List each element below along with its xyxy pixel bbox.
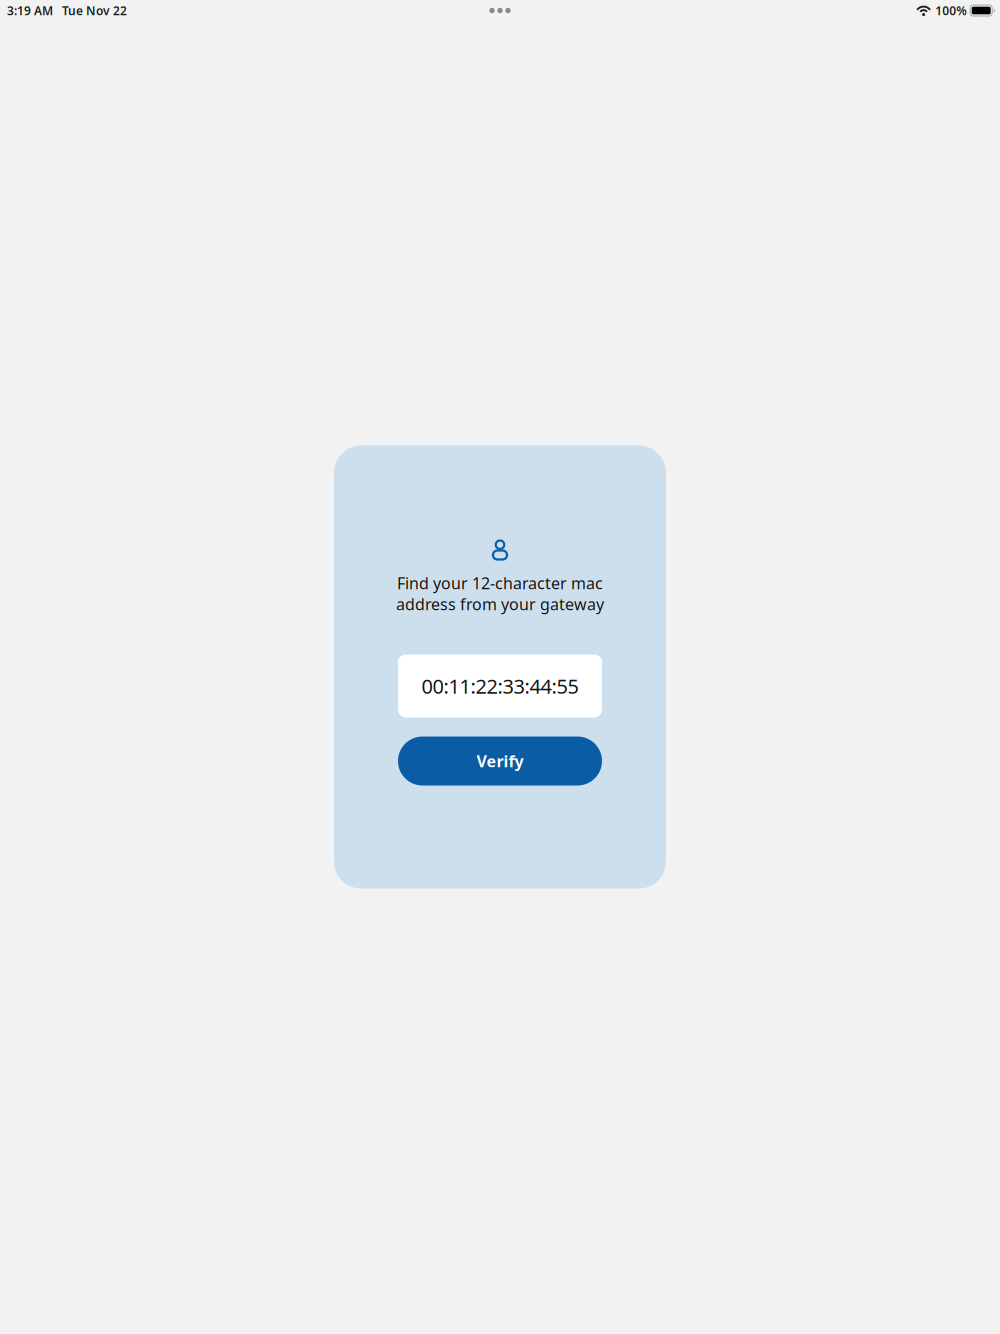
- button[interactable]: Multitasking controls: [489, 8, 511, 13]
- staticText: 3:19 AM: [7, 2, 53, 18]
- button[interactable]: Verify: [398, 736, 602, 785]
- staticText: Verify: [476, 750, 523, 772]
- staticText: address from your gateway: [396, 593, 604, 615]
- staticText: Tue Nov 22: [62, 2, 127, 18]
- button[interactable]: 00:11:22:33:44:55: [398, 654, 602, 717]
- staticText: 100%: [935, 2, 967, 18]
- staticText: Find your 12-character mac: [397, 572, 603, 594]
- staticText: 00:11:22:33:44:55: [421, 673, 578, 699]
